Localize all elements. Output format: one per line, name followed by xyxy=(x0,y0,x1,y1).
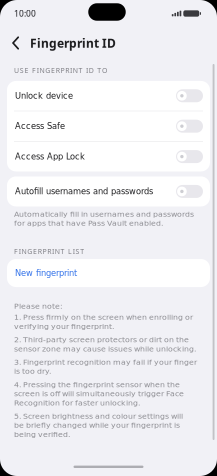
staticText: 3. Fingerprint recognition may fail if y… xyxy=(14,357,197,376)
staticText: 4. Pressing the fingerprint sensor when … xyxy=(14,380,184,407)
staticText: New fingerprint xyxy=(15,268,77,278)
staticText: 10:00 xyxy=(14,8,36,19)
staticText: USE FINGERPRINT ID TO xyxy=(14,65,107,75)
button[interactable]: Access Safe xyxy=(7,111,210,141)
button[interactable]: Access App Lock xyxy=(7,142,210,171)
staticText: Fingerprint ID xyxy=(30,35,116,51)
staticText: Unlock device xyxy=(15,91,73,101)
staticText: Access App Lock xyxy=(15,152,85,161)
staticText: Autofill usernames and passwords xyxy=(15,187,153,196)
button[interactable]: New fingerprint xyxy=(7,259,210,287)
staticText: FINGERPRINT LIST xyxy=(14,247,84,256)
staticText: 5. Screen brightness and colour settings… xyxy=(14,411,183,439)
staticText: Please note: xyxy=(14,301,63,311)
staticText: 2. Third-party screen protectors or dirt… xyxy=(14,335,196,353)
staticText: Access Safe xyxy=(15,121,65,131)
button[interactable]: Autofill usernames and passwords xyxy=(7,176,210,206)
button[interactable]: Unlock device xyxy=(7,81,210,111)
button[interactable]: Back xyxy=(0,36,30,50)
staticText: Automatically fill in usernames and pass… xyxy=(14,209,194,228)
staticText: 1. Press firmly on the screen when enrol… xyxy=(14,313,193,331)
